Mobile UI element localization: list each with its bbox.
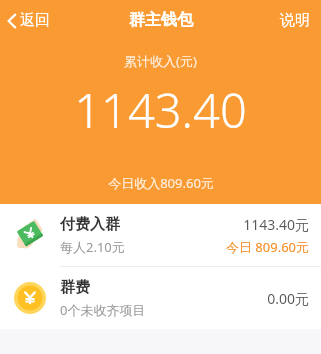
other: 付费入群 — [13, 218, 47, 252]
staticText: 0个未收齐项目 — [60, 301, 146, 319]
staticText: 0.00元 — [267, 289, 309, 308]
staticText: 今日 809.60元 — [225, 238, 309, 256]
staticText: 1143.40 — [74, 78, 247, 142]
staticText: 群费 — [60, 278, 90, 297]
staticText: 返回 — [20, 11, 50, 30]
button[interactable]: 付费入群 — [0, 204, 321, 266]
staticText: 说明 — [280, 11, 310, 30]
staticText: 今日收入809.60元 — [108, 174, 214, 192]
staticText: 每人2.10元 — [60, 238, 125, 256]
button[interactable]: 群费 — [0, 267, 321, 329]
other: 群费 — [14, 282, 46, 314]
button[interactable]: 说明 — [277, 7, 313, 34]
staticText: 付费入群 — [60, 215, 120, 234]
staticText: 群主钱包 — [129, 10, 193, 30]
staticText: 1143.40元 — [243, 215, 309, 234]
staticText: 累计收入(元) — [124, 52, 197, 70]
button[interactable]: 返回 — [4, 7, 53, 34]
